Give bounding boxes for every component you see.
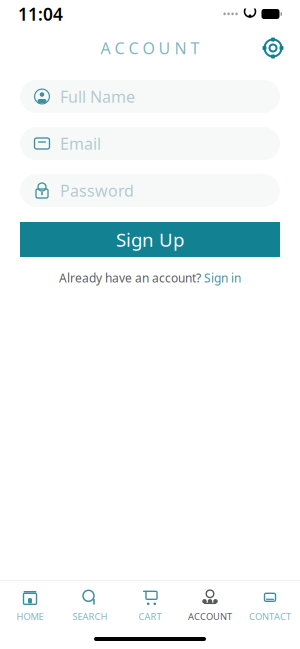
staticText: Already have an account? bbox=[59, 270, 201, 286]
staticText: SEARCH bbox=[72, 610, 107, 623]
staticText: Full Name bbox=[60, 86, 135, 107]
staticText: HOME bbox=[16, 610, 43, 623]
button[interactable]: Settings bbox=[256, 31, 290, 65]
staticText: Sign Up bbox=[116, 227, 184, 252]
staticText: A C C O U N T bbox=[100, 37, 199, 59]
button[interactable]: SEARCH bbox=[60, 587, 120, 623]
button[interactable]: Sign Up bbox=[20, 222, 280, 257]
staticText: 11:04 bbox=[18, 2, 63, 25]
button[interactable]: CART bbox=[120, 587, 180, 623]
button[interactable]: HOME bbox=[0, 587, 60, 623]
staticText: ACCOUNT bbox=[188, 610, 232, 623]
button[interactable]: ACCOUNT bbox=[180, 587, 240, 623]
button[interactable]: Already have an account? bbox=[20, 265, 280, 291]
button[interactable]: CONTACT bbox=[240, 587, 300, 623]
staticText: CART bbox=[138, 610, 161, 623]
staticText: Email bbox=[60, 133, 101, 154]
staticText: Password bbox=[60, 180, 134, 201]
staticText: Sign in bbox=[204, 270, 241, 286]
staticText: CONTACT bbox=[249, 610, 291, 623]
staticText: •••• bbox=[222, 7, 238, 21]
